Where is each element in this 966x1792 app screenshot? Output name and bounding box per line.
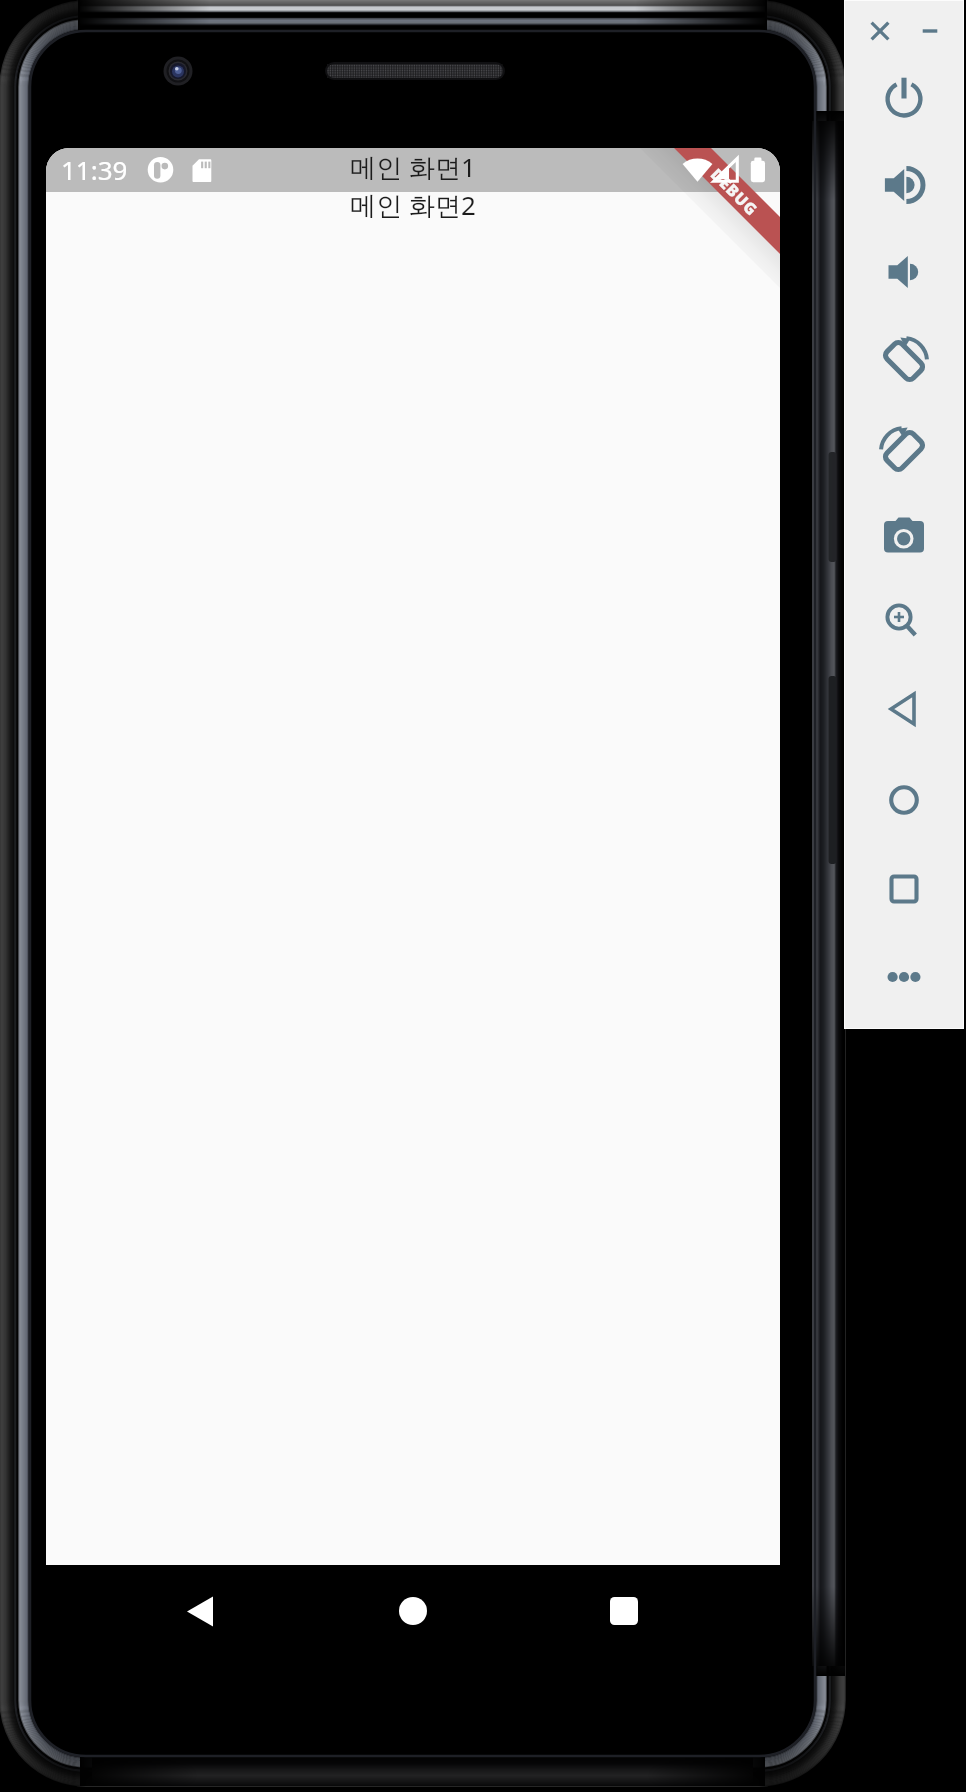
button[interactable]: Volume down (876, 244, 932, 300)
button[interactable]: Volume up (876, 157, 932, 213)
button[interactable]: Take screenshot (876, 509, 932, 565)
staticText: 메인 화면2 (350, 187, 476, 223)
button[interactable]: Power (876, 71, 932, 127)
button[interactable]: Zoom in (876, 593, 932, 649)
button[interactable]: Back (173, 1584, 227, 1638)
button[interactable]: Home (386, 1584, 440, 1638)
button[interactable]: Close (860, 11, 900, 51)
staticText: 11:39 (61, 152, 128, 187)
staticText: 메인 화면1 (350, 149, 476, 185)
button[interactable]: Recent apps (597, 1584, 651, 1638)
button[interactable]: Back (876, 681, 932, 737)
button[interactable]: More (876, 949, 932, 1005)
button[interactable]: Home (876, 772, 932, 828)
button[interactable]: Rotate right (876, 423, 932, 479)
button[interactable]: Minimize (910, 11, 950, 51)
button[interactable]: Overview (876, 861, 932, 917)
button[interactable]: Rotate left (876, 333, 932, 389)
